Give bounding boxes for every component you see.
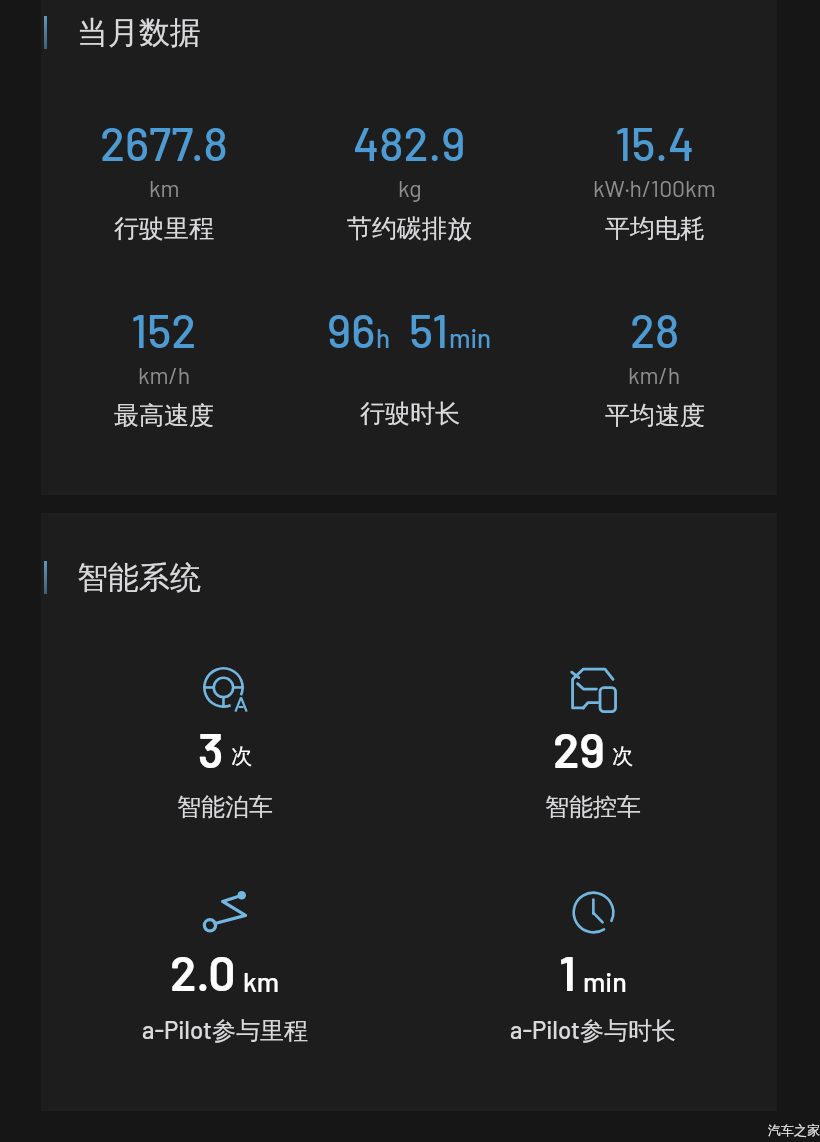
staticText: 智能泊车 <box>177 792 273 822</box>
button[interactable]: 2677.8 <box>41 115 287 244</box>
staticText: kg <box>398 174 422 202</box>
button[interactable]: 智能系统 <box>44 558 201 597</box>
staticText: 15.4 <box>615 115 695 170</box>
staticText: 次 <box>612 743 633 769</box>
staticText: 96 <box>327 302 376 357</box>
staticText: 行驶时长 <box>360 398 460 429</box>
staticText: min <box>583 965 627 997</box>
staticText: 节约碳排放 <box>347 213 472 244</box>
staticText: 最高速度 <box>114 400 214 431</box>
staticText: 平均电耗 <box>605 213 705 244</box>
staticText: 平均速度 <box>605 400 705 431</box>
staticText: 482.9 <box>353 115 466 170</box>
staticText: 28 <box>630 302 680 357</box>
staticText: 行驶里程 <box>114 213 214 244</box>
staticText: 3 <box>198 720 224 778</box>
staticText: kW·h/100km <box>593 174 716 202</box>
button[interactable]: a-Pilot参与时长 <box>409 890 777 1046</box>
staticText: a-Pilot参与里程 <box>142 1015 308 1046</box>
button[interactable]: 智能控车 <box>409 667 777 822</box>
button[interactable]: 28 <box>532 302 777 431</box>
button[interactable]: 152 <box>41 302 287 431</box>
button[interactable]: 96 <box>287 302 532 429</box>
staticText: km/h <box>628 361 681 389</box>
staticText: 智能系统 <box>77 558 201 597</box>
staticText: 当月数据 <box>77 13 201 52</box>
button[interactable]: a-Pilot参与里程 <box>41 890 409 1046</box>
staticText: 1 <box>559 943 576 1001</box>
staticText: km <box>243 965 280 997</box>
staticText: 152 <box>131 302 197 357</box>
button[interactable]: 482.9 <box>287 115 532 244</box>
button[interactable]: 智能泊车 <box>41 667 409 822</box>
staticText: min <box>449 322 492 353</box>
staticText: 29 <box>553 720 605 778</box>
staticText: km <box>149 174 180 202</box>
staticText: 51 <box>409 302 449 357</box>
staticText: km/h <box>138 361 191 389</box>
button[interactable]: 15.4 <box>532 115 777 244</box>
staticText: 智能控车 <box>545 792 641 822</box>
staticText: 2.0 <box>170 943 236 1001</box>
staticText: 2677.8 <box>100 115 228 170</box>
staticText: 汽车之家 <box>768 1122 820 1138</box>
staticText: a-Pilot参与时长 <box>510 1015 676 1046</box>
button[interactable]: 当月数据 <box>44 13 201 52</box>
staticText: 次 <box>231 743 252 769</box>
staticText: h <box>376 322 391 353</box>
